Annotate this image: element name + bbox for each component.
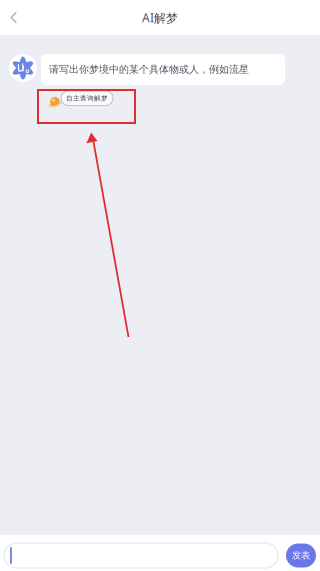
staticText: 发表 — [292, 550, 310, 561]
staticText: 自主查询解梦 — [66, 94, 108, 102]
button[interactable]: Back — [0, 0, 28, 34]
button[interactable]: 发表 — [286, 543, 316, 567]
staticText: 请写出你梦境中的某个具体物或人，例如流星 — [49, 63, 249, 76]
button[interactable]: 自主查询解梦 — [44, 91, 113, 105]
staticText: AI解梦 — [142, 9, 178, 26]
